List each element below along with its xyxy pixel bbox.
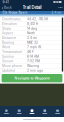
staticText: Moon phase — [2, 64, 22, 68]
staticText: Elk Ridge Basin — [2, 11, 27, 15]
staticText: 2 min ago — [27, 69, 43, 72]
button[interactable]: Tab 3 — [26, 106, 38, 117]
staticText: 46 F — [27, 50, 34, 54]
staticText: 2.4 mi — [27, 36, 37, 40]
staticText: Waxing — [27, 64, 39, 68]
staticText: 8,412 ft — [27, 22, 38, 26]
button[interactable]: Tab 4 — [38, 106, 51, 117]
staticText: Elevation — [2, 22, 17, 26]
staticText: Navigate to Waypoint — [14, 76, 49, 80]
staticText: Slope — [2, 26, 11, 30]
button[interactable]: ‹ — [0, 4, 13, 11]
staticText: Bearing — [2, 40, 14, 44]
staticText: Back — [4, 6, 12, 9]
button[interactable]: Navigate to Waypoint — [2, 74, 62, 82]
staticText: 44.42, -110.58 — [27, 17, 48, 21]
button[interactable]: Tab 5 — [51, 106, 64, 117]
staticText: Wind — [2, 45, 10, 49]
staticText: Sunset — [2, 59, 13, 63]
staticText: Coordinates — [2, 17, 21, 21]
staticText: 6:14 AM — [27, 55, 39, 58]
staticText: 14 deg — [27, 26, 37, 30]
staticText: Distance — [2, 36, 16, 40]
button[interactable]: More — [49, 4, 64, 11]
staticText: Updated — [2, 69, 15, 72]
staticText: 7:52 PM — [27, 59, 40, 63]
staticText: Trail Detail — [22, 5, 41, 10]
staticText: Sunrise — [2, 55, 14, 58]
staticText: 2.4 mi — [51, 11, 61, 14]
staticText: ‹ — [2, 5, 4, 10]
staticText: North — [27, 31, 35, 35]
staticText: NNE 32 — [27, 40, 38, 44]
button[interactable]: Tab 1 — [0, 106, 13, 117]
button[interactable]: Tab 2 — [13, 106, 26, 117]
staticText: 9:41 — [2, 0, 8, 4]
staticText: Temperature — [2, 50, 22, 54]
staticText: 7 mph W — [27, 45, 41, 49]
staticText: Aspect — [2, 31, 13, 35]
